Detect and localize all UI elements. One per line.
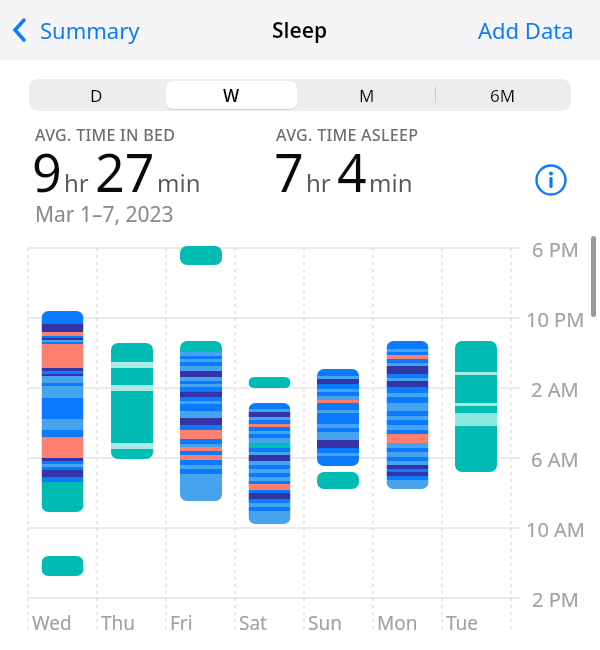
staticText: min bbox=[369, 166, 413, 199]
button[interactable]: D bbox=[31, 81, 162, 109]
staticText: Sun bbox=[308, 610, 342, 636]
staticText: 6 PM bbox=[532, 236, 579, 260]
staticText: 9 bbox=[32, 136, 62, 207]
staticText: 27 bbox=[95, 136, 155, 207]
staticText: D bbox=[90, 84, 103, 107]
staticText: Mon bbox=[377, 610, 418, 636]
staticText: 2 AM bbox=[531, 376, 579, 400]
staticText: Sat bbox=[239, 610, 267, 636]
staticText: Summary bbox=[40, 15, 140, 45]
button[interactable] bbox=[534, 163, 568, 197]
staticText: Mar 1–7, 2023 bbox=[35, 200, 174, 229]
staticText: Thu bbox=[101, 610, 136, 636]
staticText: W bbox=[223, 84, 240, 107]
staticText: 10 AM bbox=[526, 516, 585, 540]
staticText: Tue bbox=[446, 610, 479, 636]
button[interactable]: W bbox=[166, 81, 297, 109]
staticText: 6M bbox=[490, 84, 516, 107]
staticText: AVG. TIME IN BED bbox=[35, 124, 176, 146]
staticText: 2 PM bbox=[532, 586, 579, 610]
staticText: 6 AM bbox=[531, 446, 579, 470]
staticText: hr bbox=[306, 166, 331, 199]
staticText: Sleep bbox=[272, 16, 328, 45]
staticText: M bbox=[359, 84, 375, 107]
staticText: Add Data bbox=[478, 15, 574, 45]
staticText: hr bbox=[64, 166, 89, 199]
button[interactable]: 6M bbox=[437, 81, 569, 109]
button[interactable]: Add Data bbox=[478, 15, 574, 45]
staticText: Wed bbox=[32, 610, 72, 636]
staticText: min bbox=[157, 166, 201, 199]
staticText: 7 bbox=[274, 136, 304, 207]
button[interactable]: Summary bbox=[12, 15, 140, 45]
staticText: Fri bbox=[170, 610, 193, 636]
staticText: AVG. TIME ASLEEP bbox=[276, 124, 419, 146]
button[interactable]: M bbox=[301, 81, 433, 109]
staticText: 4 bbox=[337, 136, 367, 207]
staticText: 10 PM bbox=[526, 306, 585, 330]
